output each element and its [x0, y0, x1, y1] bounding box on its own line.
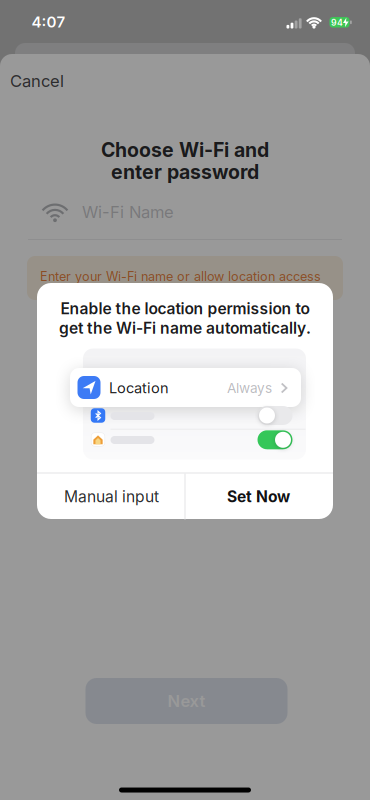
staticText: 94 — [331, 17, 343, 28]
staticText: get the Wi-Fi name automatically. — [59, 319, 311, 337]
staticText: Cancel — [10, 71, 64, 91]
button[interactable]: Set Now — [185, 474, 331, 519]
staticText: Wi-Fi Name — [82, 202, 174, 222]
staticText: Set Now — [227, 487, 290, 506]
staticText: Enter your Wi-Fi name or allow location … — [40, 269, 321, 284]
staticText: Next — [167, 691, 205, 711]
staticText: Location — [109, 379, 169, 397]
staticText: Always — [227, 380, 272, 396]
button[interactable]: Next — [85, 678, 287, 724]
button[interactable]: Cancel — [10, 66, 120, 96]
staticText: enter password — [111, 160, 259, 184]
staticText: Choose Wi-Fi and — [101, 138, 269, 162]
staticText: Enable the location permission to — [60, 299, 309, 318]
button[interactable]: Manual input — [38, 474, 184, 519]
staticText: 4:07 — [31, 13, 65, 31]
staticText: Manual input — [64, 487, 159, 506]
